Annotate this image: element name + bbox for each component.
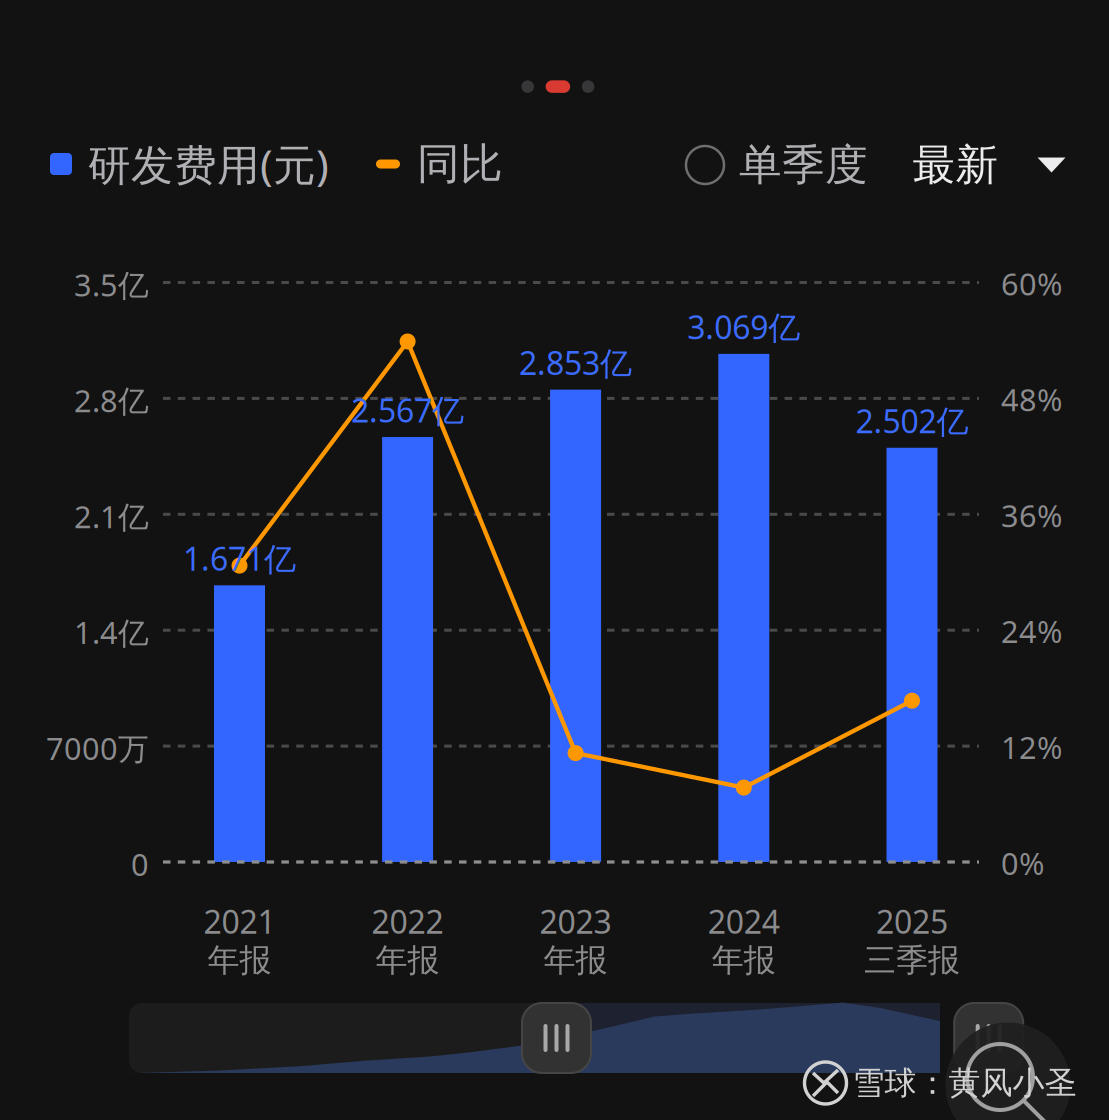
staticText: 2021	[203, 900, 275, 943]
staticText: 2.502亿	[855, 399, 968, 442]
staticText: 48%	[1001, 379, 1062, 420]
button[interactable]: Search	[945, 1022, 1070, 1120]
staticText: 12%	[1001, 727, 1062, 767]
staticText: 0	[131, 844, 149, 884]
staticText: 3.069亿	[687, 306, 800, 348]
staticText: 研发费用(元)	[88, 136, 329, 192]
staticText: 24%	[1001, 611, 1062, 651]
staticText: 年报	[544, 941, 608, 980]
staticText: 2022	[372, 900, 444, 943]
staticText: 1.671亿	[183, 537, 296, 580]
button[interactable]: 单季度	[686, 139, 868, 191]
staticText: 7000万	[46, 728, 149, 768]
staticText: 0%	[1001, 843, 1044, 883]
staticText: 60%	[1001, 263, 1062, 304]
staticText: 1.4亿	[74, 612, 149, 652]
staticText: 2.8亿	[74, 380, 149, 421]
staticText: 3.5亿	[74, 264, 149, 305]
staticText: 36%	[1001, 495, 1062, 536]
button[interactable]: Range handle	[954, 1003, 1023, 1073]
button[interactable]: Range handle	[522, 1003, 591, 1073]
staticText: 年报	[207, 941, 271, 980]
staticText: 2.1亿	[74, 496, 149, 537]
staticText: 2025	[876, 900, 948, 943]
staticText: 单季度	[739, 139, 868, 191]
staticText: 年报	[376, 941, 440, 980]
button[interactable]: 最新	[912, 139, 1065, 191]
staticText: 年报	[712, 941, 776, 980]
staticText: 2023	[540, 900, 612, 943]
staticText: 雪球：黄风小圣	[852, 1063, 1076, 1103]
staticText: 三季报	[864, 941, 960, 980]
staticText: 最新	[912, 139, 998, 191]
staticText: 同比	[417, 138, 503, 190]
staticText: 2.567亿	[351, 389, 464, 431]
staticText: 2024	[708, 900, 780, 943]
staticText: 2.853亿	[519, 341, 632, 384]
